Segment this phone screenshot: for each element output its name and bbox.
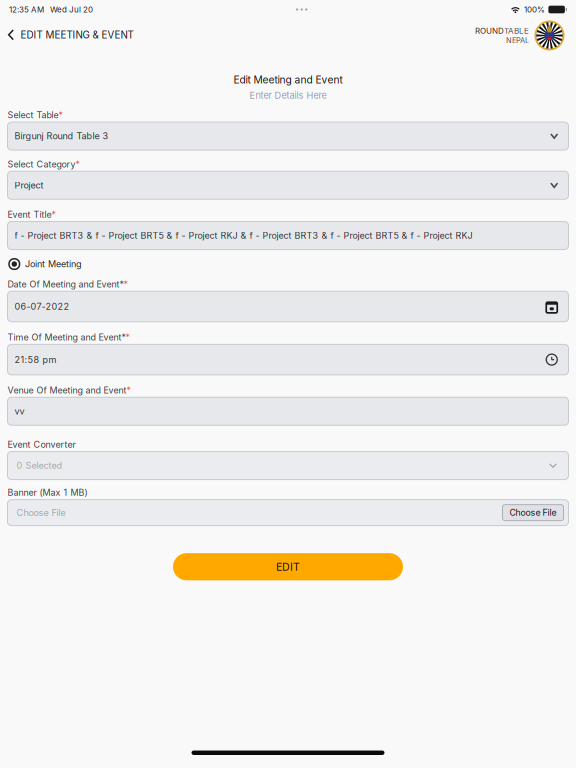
- staticText: Venue Of Meeting and Event: [7, 385, 126, 396]
- staticText: *: [119, 279, 123, 290]
- staticText: *: [51, 209, 55, 220]
- staticText: Edit Meeting and Event: [233, 73, 342, 86]
- staticText: Event Title: [7, 209, 51, 220]
- staticText: 06-07-2022: [14, 301, 69, 312]
- staticText: Time Of Meeting and Event: [7, 332, 121, 343]
- staticText: vv: [14, 406, 24, 417]
- staticText: Enter Details Here: [249, 90, 326, 101]
- button[interactable]: EDIT MEETING & EVENT: [0, 24, 133, 46]
- staticText: Project: [14, 180, 43, 191]
- staticText: *: [75, 159, 79, 170]
- staticText: EDIT: [276, 560, 300, 573]
- staticText: *: [123, 279, 127, 290]
- staticText: Choose File: [509, 507, 556, 518]
- staticText: f - Project BRT3 & f - Project BRT5 & f …: [14, 230, 472, 241]
- staticText: NEPAL: [506, 36, 529, 45]
- staticText: 100%: [524, 5, 545, 14]
- staticText: Wed Jul 20: [50, 5, 93, 14]
- staticText: *: [58, 110, 62, 120]
- button[interactable]: EDIT: [173, 553, 403, 580]
- staticText: Banner (Max 1 MB): [7, 487, 87, 498]
- staticText: *: [126, 385, 130, 396]
- staticText: EDIT MEETING & EVENT: [20, 29, 133, 41]
- staticText: Birgunj Round Table 3: [14, 131, 108, 142]
- staticText: TABLE: [504, 26, 529, 36]
- staticText: *: [121, 332, 125, 343]
- staticText: Event Converter: [7, 439, 75, 450]
- staticText: Select Table: [7, 110, 58, 120]
- button[interactable]: Joint Meeting: [7, 257, 568, 272]
- staticText: Joint Meeting: [25, 259, 82, 270]
- staticText: 21:58 pm: [14, 354, 56, 365]
- staticText: Choose File: [16, 507, 65, 518]
- staticText: Select Category: [7, 159, 75, 170]
- staticText: Date Of Meeting and Event: [7, 279, 119, 290]
- staticText: ROUND: [475, 26, 504, 36]
- button[interactable]: Choose File: [502, 505, 563, 521]
- staticText: 12:35 AM: [9, 5, 44, 14]
- staticText: 0 Selected: [16, 460, 62, 471]
- staticText: *: [125, 332, 129, 343]
